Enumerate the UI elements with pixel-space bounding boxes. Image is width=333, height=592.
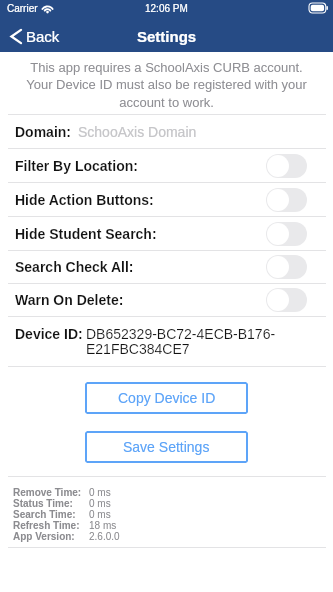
staticText: Save Settings [123,439,210,455]
staticText: 0 ms [89,487,111,498]
button[interactable]: Toggle [266,255,307,279]
staticText: Search Time: [13,509,76,520]
other: Battery [309,3,328,13]
staticText: Copy Device ID [118,390,216,406]
button[interactable]: Toggle [266,288,307,312]
button[interactable]: Save Settings [85,431,248,463]
staticText: 0 ms [89,498,111,509]
staticText: SchooAxis Domain [78,124,197,140]
staticText: Domain: [15,124,71,140]
staticText: Hide Action Buttons: [15,192,154,208]
button[interactable]: Warn On Delete: [0,284,333,316]
staticText: Remove Time: [13,487,82,498]
staticText: Filter By Location: [15,158,138,174]
staticText: Device ID: [15,326,83,342]
staticText: Warn On Delete: [15,292,124,308]
button[interactable]: Search Check All: [0,251,333,283]
button[interactable]: Domain: [0,115,333,148]
staticText: Carrier [7,3,38,14]
button[interactable]: Device ID: [0,317,333,366]
button[interactable]: Toggle [266,154,307,178]
staticText: 12:06 PM [145,3,188,14]
button[interactable]: Copy Device ID [85,382,248,414]
button[interactable]: Hide Action Buttons: [0,183,333,216]
staticText: Status Time: [13,498,73,509]
staticText: Settings [137,28,197,45]
other: Back [10,29,22,44]
staticText: This app requires a SchoolAxis CURB acco… [0,60,333,110]
staticText: 0 ms [89,509,111,520]
button[interactable]: Filter By Location: [0,149,333,182]
staticText: App Version: [13,531,75,542]
button[interactable]: Toggle [266,222,307,246]
button[interactable]: Toggle [266,188,307,212]
staticText: Refresh Time: [13,520,80,531]
staticText: DB652329-BC72-4ECB-B176- E21FBC384CE7 [86,326,276,357]
staticText: Hide Student Search: [15,226,157,242]
staticText: Back [26,28,60,45]
other: Wi-Fi [41,4,54,14]
staticText: Search Check All: [15,259,134,275]
staticText: 18 ms [89,520,117,531]
button[interactable]: Hide Student Search: [0,217,333,250]
button[interactable]: Back [0,23,68,50]
staticText: 2.6.0.0 [89,531,120,542]
